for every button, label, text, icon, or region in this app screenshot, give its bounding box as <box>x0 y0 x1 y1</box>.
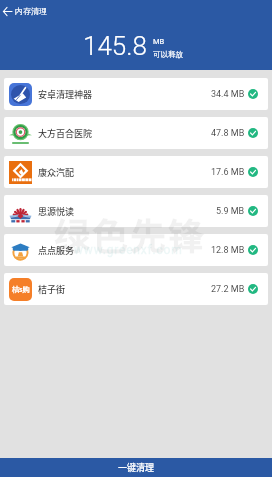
staticText: 47.8 MB <box>211 128 245 139</box>
staticText: MB <box>153 37 165 46</box>
button[interactable]: 桔s购 <box>4 273 268 305</box>
staticText: 安卓清理神器 <box>38 88 93 101</box>
other: Back <box>1 5 13 17</box>
button[interactable]: 安卓清理神器 <box>4 78 268 110</box>
staticText: www.greenxf.com <box>74 243 183 257</box>
staticText: 145.8 <box>83 31 147 61</box>
staticText: 可以释放 <box>153 50 183 59</box>
staticText: 34.4 MB <box>211 89 245 100</box>
staticText: 17.6 MB <box>211 167 245 178</box>
staticText: 一键清理 <box>118 461 155 474</box>
button[interactable]: 康众汽配 <box>4 156 268 188</box>
button[interactable]: Back <box>0 0 272 22</box>
staticText: 5.9 MB <box>216 206 245 217</box>
button[interactable]: 思源悦读 <box>4 195 268 227</box>
staticText: 12.8 MB <box>211 245 245 256</box>
staticText: 大方百合医院 <box>38 127 93 140</box>
staticText: 点点服务 <box>38 244 75 257</box>
staticText: 康众汽配 <box>38 166 75 179</box>
button[interactable]: 大方百合医院 <box>4 117 268 149</box>
button[interactable]: 点点服务 <box>4 234 268 266</box>
staticText: 27.2 MB <box>211 284 245 295</box>
staticText: 桔子街 <box>38 283 66 296</box>
staticText: 思源悦读 <box>38 205 75 218</box>
button[interactable]: 一键清理 <box>0 458 272 477</box>
staticText: 桔s购 <box>12 285 30 295</box>
staticText: 绿色先锋 <box>54 208 207 260</box>
staticText: 内存清理 <box>15 6 47 16</box>
